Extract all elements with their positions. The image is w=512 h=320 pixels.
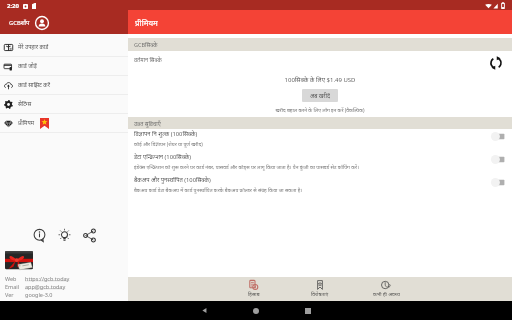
staticText: उन्नत सुविधाएँ xyxy=(134,120,161,127)
button[interactable]: हिसाब xyxy=(221,277,287,301)
button[interactable]: अब खरीदें xyxy=(302,89,338,102)
button[interactable]: कार्ड जोड़ें xyxy=(0,57,128,75)
button[interactable]: Toggle विज्ञापन नि शुल्क (100सिक्के) xyxy=(489,130,505,143)
staticText: मेरे उपहार कार्ड xyxy=(18,43,49,51)
staticText: डेटा एन्क्रिप्शन (100सिक्के) xyxy=(134,153,192,161)
button[interactable]: विज्ञापन नि शुल्क (100सिक्के) xyxy=(128,129,512,152)
button[interactable]: Toggle बैकअप और पुनर्स्थापित (100सिक्के) xyxy=(489,176,505,189)
staticText: कार्ड जोड़ें xyxy=(18,62,37,70)
staticText: विशेषताएं xyxy=(311,291,329,298)
staticText: विज्ञापन नि शुल्क (100सिक्के) xyxy=(134,130,198,138)
staticText: Email xyxy=(5,283,25,290)
staticText: कोई और विज्ञापन (शेयर या पूर्ण खरीद) xyxy=(134,141,203,148)
button[interactable]: कभी ही अवश्य xyxy=(353,277,419,301)
button[interactable]: app@gcb.today xyxy=(25,283,66,290)
staticText: Ver xyxy=(5,291,25,298)
button[interactable]: Home xyxy=(230,301,282,320)
button[interactable]: Gift card xyxy=(5,250,33,272)
staticText: 100सिक्के के लिए $1.49 USD xyxy=(128,76,512,84)
button[interactable]: सेटिंग्स xyxy=(0,95,128,113)
button[interactable]: Tips xyxy=(57,228,72,243)
button[interactable]: मेरे उपहार कार्ड xyxy=(0,38,128,56)
staticText: इंडेक्स एन्क्रिप्शन को शुरू करने पर कार्… xyxy=(134,164,359,171)
staticText: कार्ड साझिट करें xyxy=(18,81,50,89)
button[interactable]: बैकअप और पुनर्स्थापित (100सिक्के) xyxy=(128,175,512,198)
button[interactable]: Refresh xyxy=(490,57,502,69)
staticText: अब खरीदें xyxy=(310,92,330,99)
button[interactable]: Account xyxy=(35,16,49,30)
staticText: खरीद बहाल करने के लिए लॉग इन करें (वैकल्… xyxy=(128,107,512,114)
staticText: google-3.0 xyxy=(25,291,53,298)
staticText: GCBशॉप xyxy=(9,19,30,27)
staticText: 2:20 xyxy=(7,2,19,10)
staticText: प्रीमियम xyxy=(18,119,35,127)
button[interactable]: Recents xyxy=(282,301,334,320)
staticText: GCBसिक्के xyxy=(134,41,158,48)
staticText: वर्तमान सिक्के xyxy=(134,56,162,63)
button[interactable]: डेटा एन्क्रिप्शन (100सिक्के) xyxy=(128,152,512,175)
button[interactable]: कार्ड साझिट करें xyxy=(0,76,128,94)
button[interactable]: प्रीमियम xyxy=(0,114,128,132)
button[interactable]: Share xyxy=(82,228,97,243)
staticText: प्रीमियम xyxy=(135,17,158,28)
staticText: बैकअप कार्ड डेटा बैकअप में कार्ड पुनर्स्… xyxy=(134,187,303,194)
staticText: सेटिंग्स xyxy=(18,100,32,108)
button[interactable]: Toggle डेटा एन्क्रिप्शन (100सिक्के) xyxy=(489,153,505,166)
button[interactable]: About xyxy=(32,228,47,243)
staticText: हिसाब xyxy=(248,291,260,298)
staticText: Web xyxy=(5,275,25,282)
staticText: कभी ही अवश्य xyxy=(373,291,400,298)
button[interactable]: विशेषताएं xyxy=(287,277,353,301)
button[interactable]: https://gcb.today xyxy=(25,275,70,282)
staticText: बैकअप और पुनर्स्थापित (100सिक्के) xyxy=(134,176,211,184)
button[interactable]: Back xyxy=(178,301,230,320)
